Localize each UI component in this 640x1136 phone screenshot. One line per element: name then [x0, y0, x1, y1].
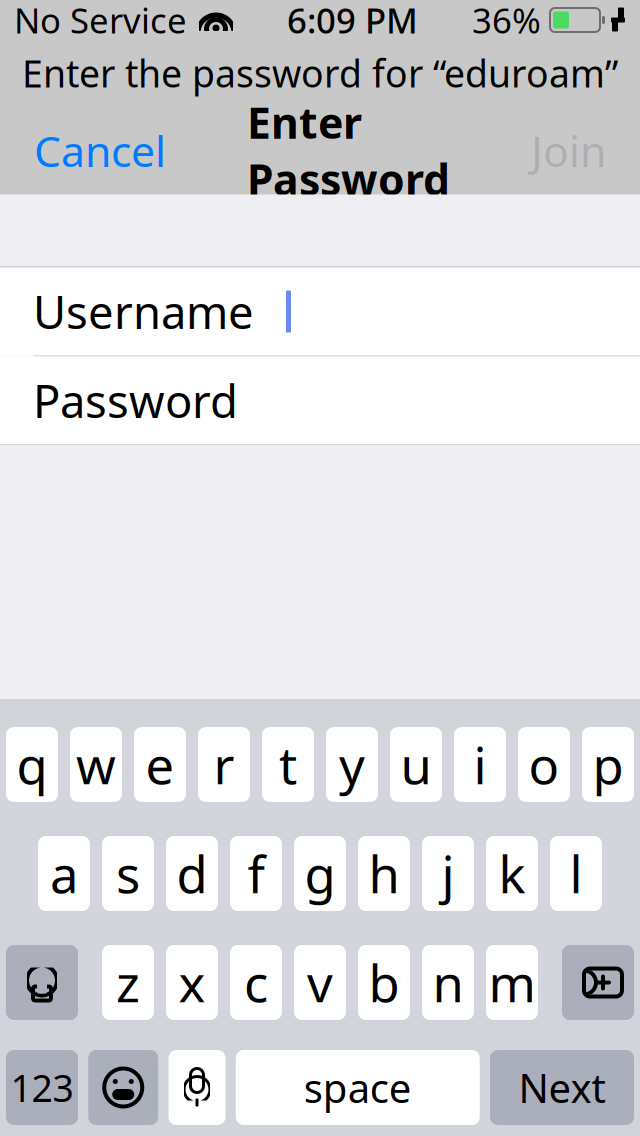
staticText: g	[304, 840, 335, 907]
staticText: z	[116, 949, 140, 1016]
staticText: Join	[531, 122, 606, 179]
staticText: k	[498, 840, 525, 907]
staticText: x	[178, 949, 205, 1016]
button[interactable]: Shift	[6, 945, 78, 1020]
button[interactable]: Username	[0, 267, 640, 355]
staticText: j	[441, 840, 454, 907]
button[interactable]: k	[486, 836, 538, 911]
staticText: t	[279, 731, 297, 798]
staticText: space	[304, 1061, 412, 1114]
button[interactable]: Next	[490, 1050, 634, 1125]
staticText: Username	[33, 281, 254, 342]
button[interactable]: l	[550, 836, 602, 911]
staticText: Next	[518, 1061, 605, 1114]
button[interactable]: j	[422, 836, 474, 911]
button[interactable]: u	[390, 727, 442, 802]
button[interactable]: s	[102, 836, 154, 911]
staticText: d	[176, 840, 207, 907]
staticText: p	[592, 731, 623, 798]
staticText: Enter Password	[247, 94, 450, 207]
staticText: Cancel	[34, 122, 166, 179]
button[interactable]: n	[422, 945, 474, 1020]
button[interactable]: Cancel	[16, 110, 184, 190]
button[interactable]: b	[358, 945, 410, 1020]
button[interactable]: y	[326, 727, 378, 802]
button[interactable]: e	[134, 727, 186, 802]
button[interactable]: z	[102, 945, 154, 1020]
staticText: v	[307, 949, 333, 1016]
staticText: f	[247, 840, 264, 907]
button[interactable]: w	[70, 727, 122, 802]
button[interactable]: t	[262, 727, 314, 802]
staticText: 6:09 PM	[287, 0, 418, 43]
button[interactable]: f	[230, 836, 282, 911]
button[interactable]: d	[166, 836, 218, 911]
button[interactable]: Delete	[562, 945, 634, 1020]
button[interactable]: a	[38, 836, 90, 911]
staticText: l	[569, 840, 582, 907]
button[interactable]: space	[236, 1050, 480, 1125]
staticText: a	[50, 840, 78, 907]
staticText: q	[16, 731, 47, 798]
staticText: Password	[33, 370, 238, 431]
button[interactable]: Join	[513, 110, 624, 190]
button[interactable]: q	[6, 727, 58, 802]
staticText: Enter the password for “eduroam”	[22, 48, 618, 98]
staticText: c	[244, 949, 268, 1016]
staticText: e	[145, 731, 174, 798]
button[interactable]: i	[454, 727, 506, 802]
button[interactable]: 123	[6, 1050, 78, 1125]
button[interactable]: r	[198, 727, 250, 802]
staticText: u	[400, 731, 431, 798]
button[interactable]: Password	[0, 356, 640, 444]
button[interactable]: v	[294, 945, 346, 1020]
button[interactable]: Emoji	[88, 1050, 158, 1125]
button[interactable]: x	[166, 945, 218, 1020]
staticText: y	[339, 731, 365, 798]
staticText: No Service	[14, 0, 187, 43]
button[interactable]: p	[582, 727, 634, 802]
staticText: o	[528, 731, 559, 798]
button[interactable]: Dictation	[168, 1050, 225, 1125]
button[interactable]: h	[358, 836, 410, 911]
staticText: m	[488, 949, 535, 1016]
button[interactable]: g	[294, 836, 346, 911]
staticText: r	[213, 731, 234, 798]
staticText: 36%	[472, 0, 541, 43]
button[interactable]: m	[486, 945, 538, 1020]
staticText: 123	[10, 1063, 73, 1112]
staticText: b	[368, 949, 399, 1016]
staticText: n	[432, 949, 463, 1016]
button[interactable]: c	[230, 945, 282, 1020]
button[interactable]: o	[518, 727, 570, 802]
staticText: s	[116, 840, 140, 907]
staticText: i	[473, 731, 486, 798]
staticText: h	[368, 840, 399, 907]
staticText: w	[76, 731, 116, 798]
